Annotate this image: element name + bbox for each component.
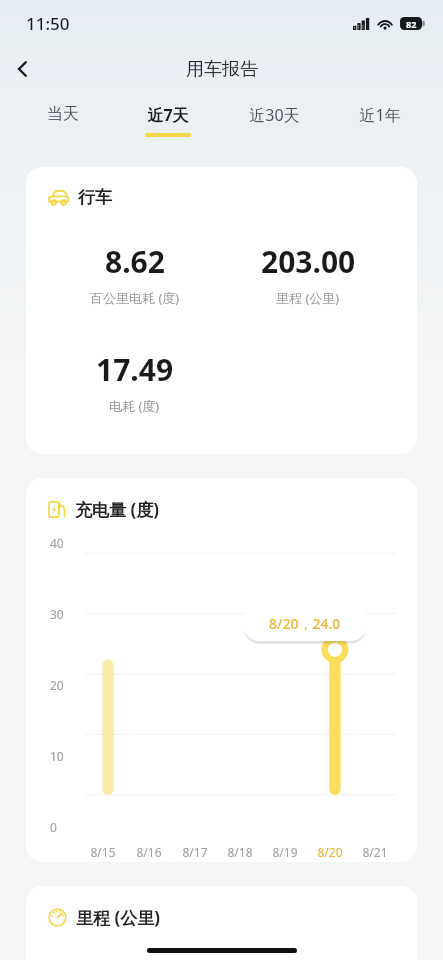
staticText: 用车报告 (186, 58, 258, 81)
staticText: 近30天 (249, 104, 300, 126)
staticText: 里程 (公里) (276, 289, 340, 307)
staticText: 8/18 (227, 844, 253, 860)
staticText: 30 (50, 606, 64, 622)
staticText: 近7天 (147, 104, 189, 126)
staticText: 8/20，24.0 (269, 614, 341, 633)
staticText: 百公里电耗 (度) (90, 289, 180, 307)
staticText: 里程 (公里) (76, 906, 160, 929)
staticText: 8/16 (136, 844, 162, 860)
button[interactable]: 近30天 (221, 92, 327, 133)
staticText: 充电量 (度) (75, 498, 159, 521)
staticText: 40 (50, 535, 64, 551)
button[interactable]: 行车 (26, 167, 417, 454)
staticText: 8/20 (317, 844, 343, 860)
staticText: 203.00 (261, 241, 356, 282)
staticText: 8.62 (105, 241, 165, 282)
staticText: 8/21 (362, 844, 388, 860)
button[interactable]: Back (0, 46, 46, 92)
button[interactable]: 当天 (10, 92, 115, 131)
staticText: 17.49 (96, 349, 174, 390)
staticText: 电耗 (度) (109, 397, 160, 415)
staticText: 8/19 (272, 844, 298, 860)
staticText: 近1年 (359, 104, 401, 126)
button[interactable]: 充电量 (度) (26, 478, 417, 862)
button[interactable]: 近1年 (327, 92, 433, 133)
staticText: 行车 (78, 187, 112, 208)
staticText: 82 (406, 18, 417, 30)
staticText: 20 (50, 677, 64, 693)
button[interactable]: 近7天 (115, 92, 221, 137)
staticText: 8/15 (90, 844, 116, 860)
button[interactable]: 里程 (公里) (26, 886, 417, 960)
staticText: 10 (50, 748, 64, 764)
staticText: 11:50 (26, 12, 70, 35)
staticText: 当天 (47, 104, 79, 124)
staticText: 8/17 (182, 844, 208, 860)
staticText: 0 (50, 819, 57, 835)
